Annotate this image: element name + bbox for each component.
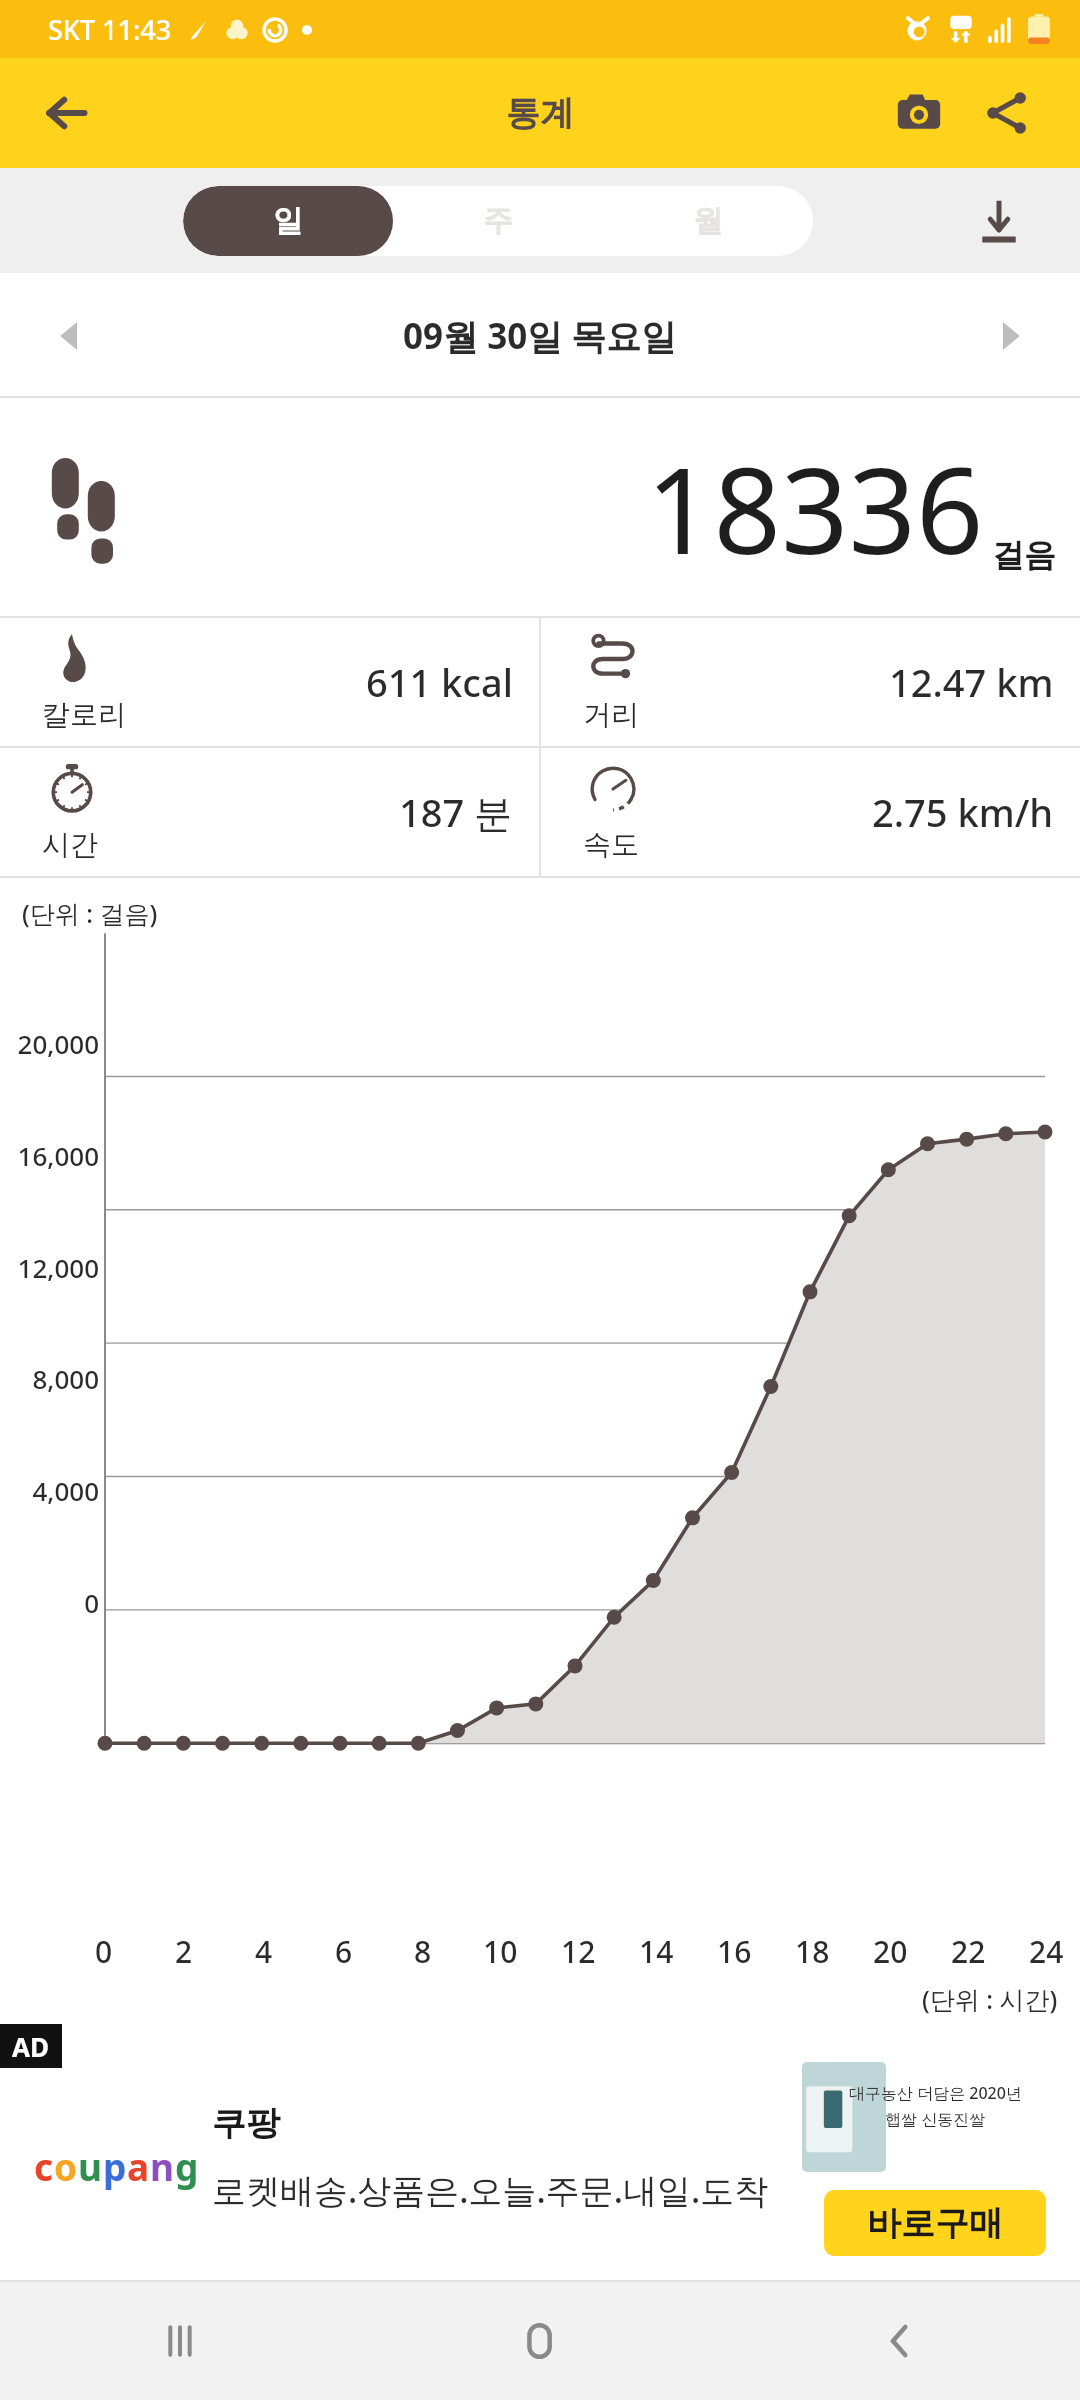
staticText: 22 [951,1931,986,1972]
staticText: 로켓배송.상품은.오늘.주문.내일.도착 [212,2167,769,2213]
staticText: 칼로리 [42,697,126,732]
staticText: 8 [414,1931,432,1972]
staticText: 0 [0,1585,99,1620]
staticText: SKT 11:43 [48,11,172,48]
staticText: 12 [561,1931,596,1972]
button[interactable]: 속도 [541,748,1080,876]
staticText: 시간 [42,827,98,862]
button[interactable]: 칼로리 [0,618,539,746]
staticText: 대구농산 더담은 2020년 [849,2082,1022,2104]
staticText: 611 kcal [366,656,513,708]
staticText: 0 [95,1931,113,1972]
button[interactable]: 월 [603,186,813,256]
staticText: 바로구매 [867,2202,1003,2245]
staticText: 4,000 [0,1473,99,1508]
staticText: 통계 [506,92,574,135]
staticText: 20,000 [0,1026,99,1061]
staticText: (단위 : 걸음) [22,896,158,930]
staticText: 187 분 [399,786,513,838]
staticText: (단위 : 시간) [922,1982,1058,2016]
button[interactable]: Back [720,2282,1080,2400]
staticText: a [127,2141,150,2191]
staticText: c [34,2141,54,2191]
staticText: 18 [795,1931,830,1972]
staticText: 24 [1029,1931,1064,1972]
staticText: 속도 [583,827,639,862]
button[interactable]: Share [968,74,1046,152]
button[interactable]: Next day [970,296,1050,376]
staticText: 주 [483,202,513,240]
staticText: 일 [273,202,303,240]
staticText: n [150,2141,175,2191]
button[interactable]: 주 [393,186,603,256]
staticText: 6 [335,1931,353,1972]
button[interactable]: Download [962,184,1036,258]
staticText: 14 [639,1931,674,1972]
staticText: 쿠팡 [212,2102,280,2145]
staticText: 09월 30일 목요일 [403,312,677,360]
staticText: 2.75 km/h [872,786,1054,838]
staticText: 10 [483,1931,518,1972]
staticText: AD [12,2029,50,2064]
button[interactable]: 시간 [0,748,539,876]
staticText: 4 [255,1931,273,1972]
button[interactable]: AD [0,2024,1080,2282]
button[interactable]: Capture screenshot [880,74,958,152]
staticText: 12,000 [0,1250,99,1285]
staticText: 걸음 [992,535,1056,575]
button[interactable]: 바로구매 [824,2190,1046,2256]
staticText: o [54,2141,78,2191]
button[interactable]: Recents [0,2282,360,2400]
button[interactable]: 일 [183,186,393,256]
staticText: 18336 [646,428,984,589]
staticText: 2 [175,1931,193,1972]
staticText: u [78,2141,103,2191]
staticText: 8,000 [0,1361,99,1396]
staticText: 20 [873,1931,908,1972]
staticText: 16,000 [0,1138,99,1173]
staticText: 12.47 km [889,656,1054,708]
button[interactable]: 거리 [541,618,1080,746]
staticText: 16 [717,1931,752,1972]
staticText: 거리 [583,697,639,732]
button[interactable]: Previous day [30,296,110,376]
button[interactable]: Home [360,2282,720,2400]
staticText: p [103,2141,127,2191]
button[interactable]: Back [28,75,104,151]
staticText: g [175,2141,199,2191]
staticText: 월 [693,202,723,240]
staticText: 햅쌀 신동진쌀 [885,2108,986,2130]
